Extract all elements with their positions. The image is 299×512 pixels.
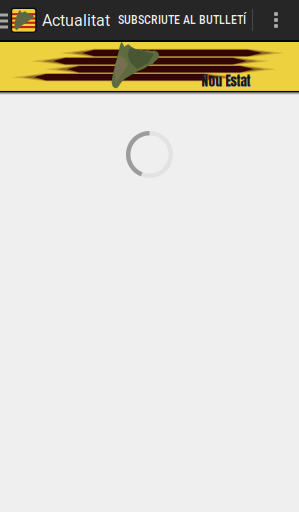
staticText: Nou Estat <box>201 71 250 91</box>
button[interactable]: SUBSCRIUTE AL BUTLLETÍ <box>111 0 253 40</box>
button[interactable]: More options <box>262 0 290 40</box>
staticText: Actualitat <box>42 11 110 30</box>
button[interactable]: Menu <box>0 1 16 41</box>
staticText: SUBSCRIUTE AL BUTLLETÍ <box>118 13 246 27</box>
staticText: Nou Estat <box>202 71 251 91</box>
